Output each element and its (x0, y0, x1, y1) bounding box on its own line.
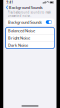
button[interactable]: Background Sounds (3, 5, 44, 10)
staticText: Bright Noise (8, 35, 30, 41)
button[interactable]: Balanced Noise (6, 27, 54, 34)
button[interactable]: Background Sounds (6, 18, 54, 26)
button[interactable]: Bright Noise (6, 34, 54, 42)
staticText: Balanced Noise (8, 28, 35, 33)
staticText: Background Sounds (9, 5, 43, 10)
staticText: Dark Noise (8, 42, 28, 48)
staticText: Play background sounds to mask unwanted … (7, 11, 50, 18)
button[interactable]: Dark Noise (6, 42, 54, 49)
staticText: Background Sounds (8, 19, 42, 25)
staticText: 9:41 (6, 1, 13, 4)
